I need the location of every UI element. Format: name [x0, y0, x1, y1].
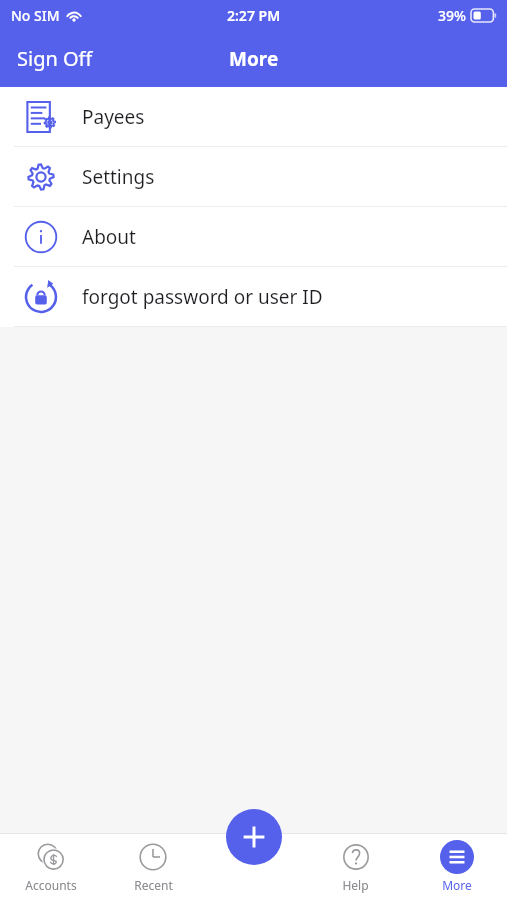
staticText: Recent [134, 877, 173, 893]
staticText: Accounts [25, 877, 77, 893]
staticText: forgot password or user ID [82, 284, 323, 310]
button[interactable]: About [0, 207, 507, 266]
button[interactable]: Recent [102, 833, 204, 900]
button[interactable]: Accounts [0, 833, 102, 900]
button[interactable]: More [406, 833, 507, 900]
staticText: Sign Off [17, 45, 93, 72]
staticText: Settings [82, 164, 155, 190]
button[interactable]: Payees [0, 87, 507, 146]
button[interactable]: Sign Off [0, 37, 110, 80]
staticText: Payees [82, 104, 145, 130]
staticText: 39% [438, 6, 466, 25]
staticText: More [229, 46, 279, 72]
button[interactable]: Add [226, 809, 282, 865]
button[interactable]: Help [305, 833, 406, 900]
staticText: About [82, 224, 136, 250]
button[interactable]: Settings [0, 147, 507, 206]
button[interactable]: forgot password or user ID [0, 267, 507, 326]
staticText: 2:27 PM [227, 6, 281, 25]
staticText: Help [342, 877, 369, 893]
staticText: More [442, 877, 472, 893]
staticText: No SIM [11, 6, 60, 25]
